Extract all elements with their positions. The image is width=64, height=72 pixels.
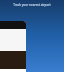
staticText: Track your nearest airport [13,3,51,7]
